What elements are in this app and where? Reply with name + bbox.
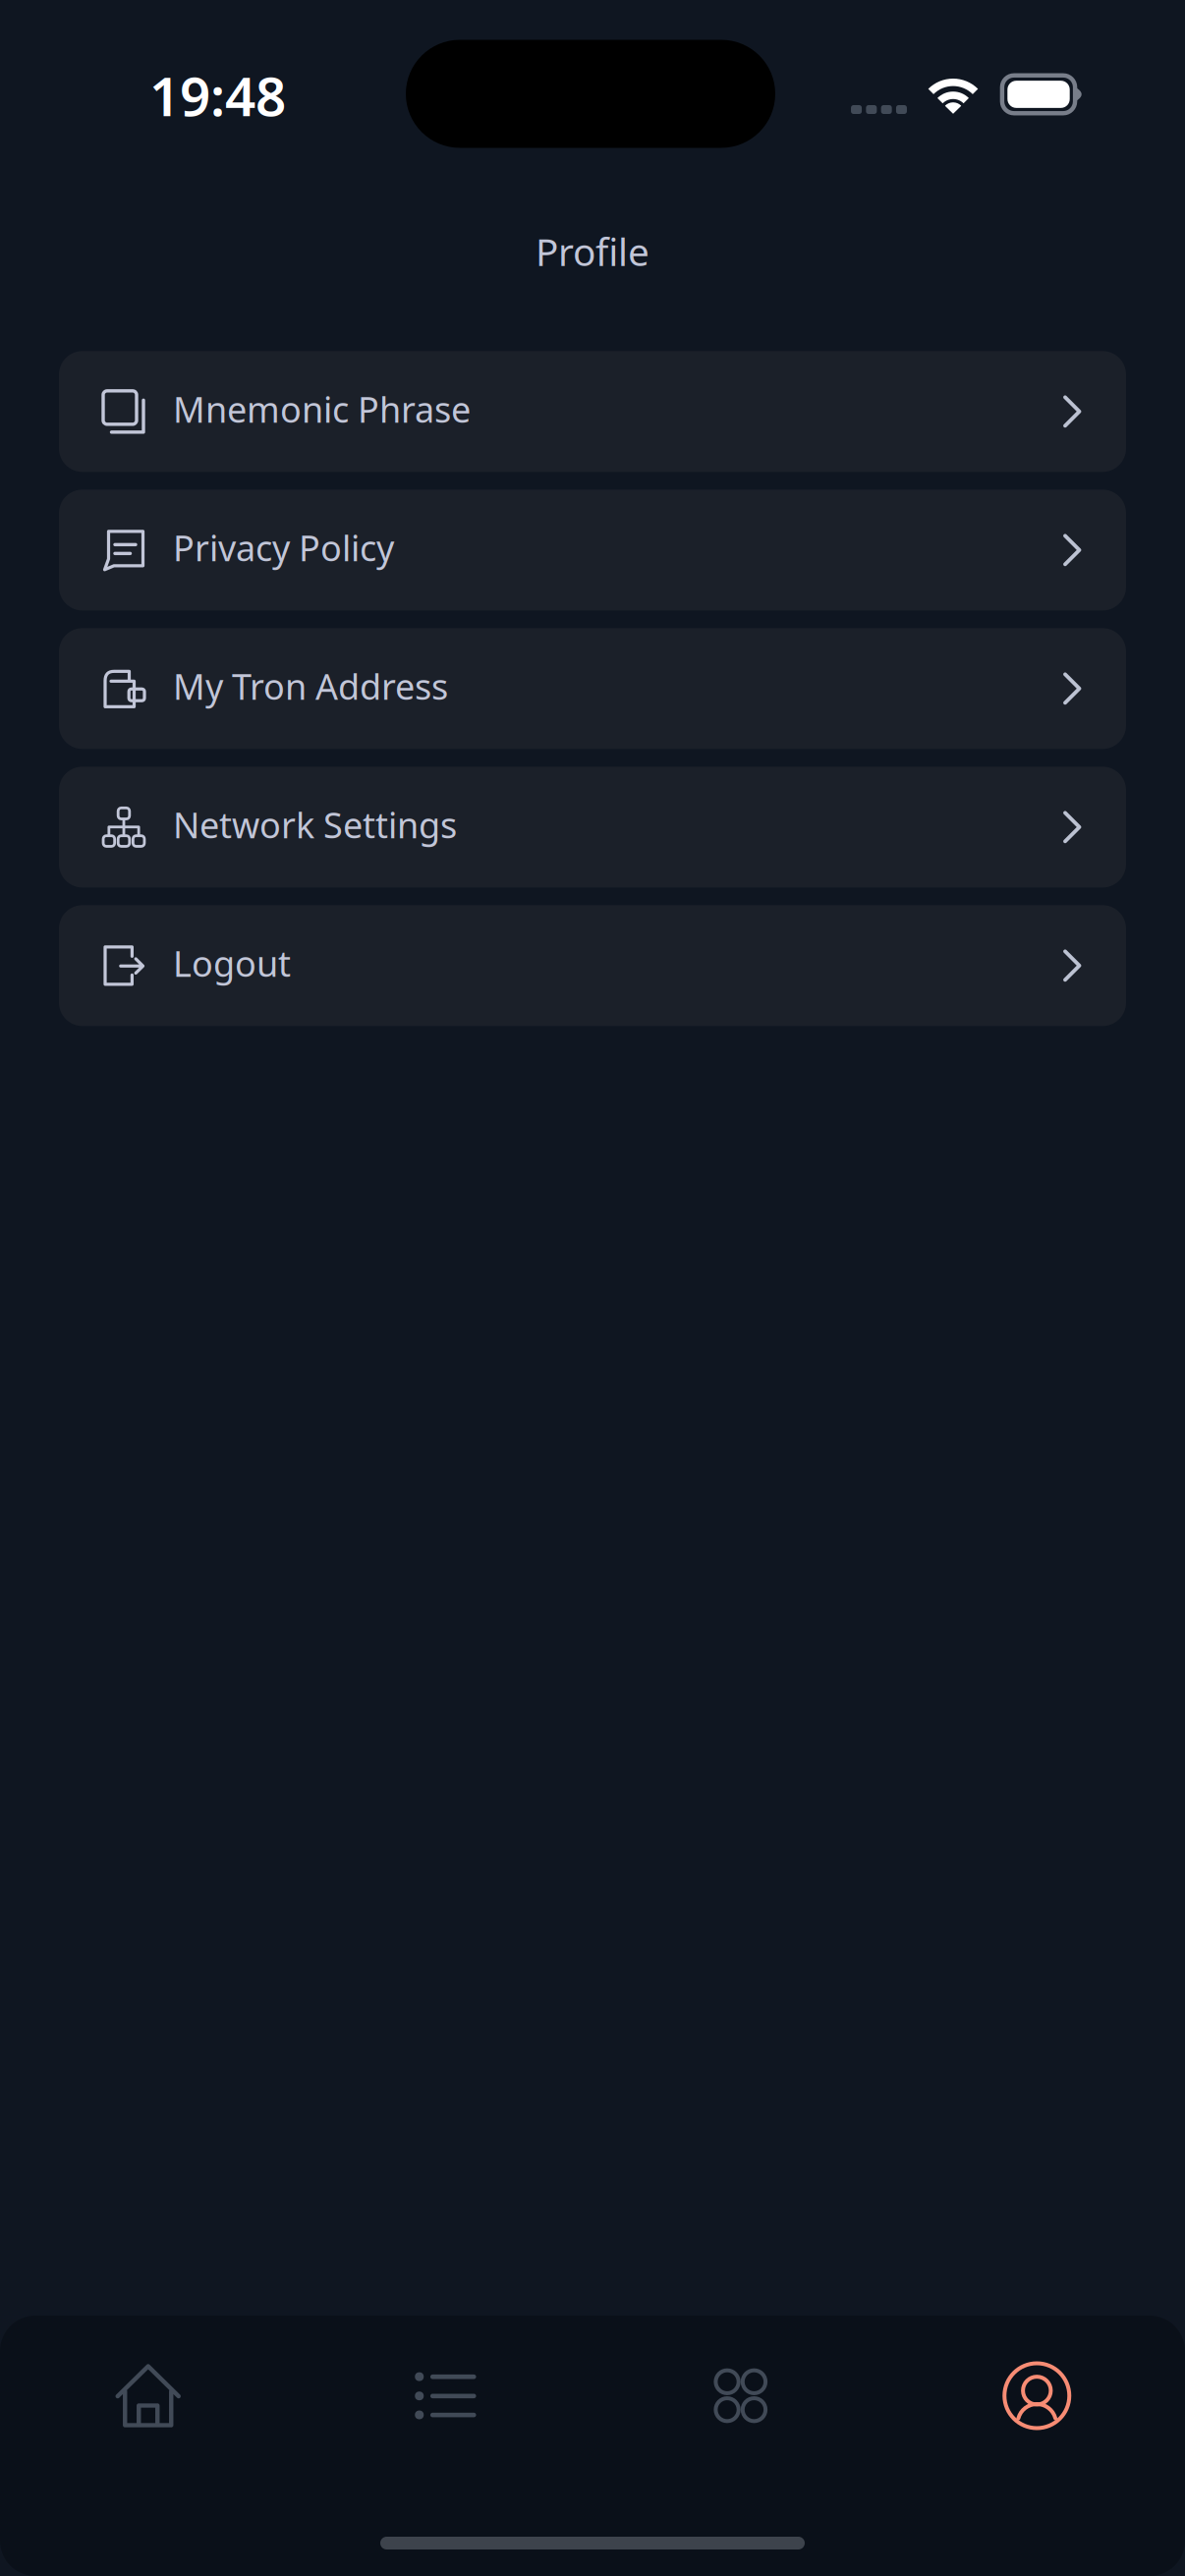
staticText: My Tron Address bbox=[173, 663, 448, 710]
button[interactable]: My Tron Address bbox=[59, 628, 1126, 749]
button[interactable]: Apps bbox=[592, 2316, 889, 2476]
staticText: Profile bbox=[536, 226, 649, 276]
staticText: Network Settings bbox=[173, 801, 457, 848]
button[interactable]: Profile bbox=[889, 2316, 1185, 2476]
button[interactable]: Privacy Policy bbox=[59, 490, 1126, 610]
staticText: Logout bbox=[173, 940, 291, 987]
staticText: Privacy Policy bbox=[173, 524, 394, 571]
button[interactable]: Transactions bbox=[296, 2316, 592, 2476]
button[interactable]: Home bbox=[0, 2316, 296, 2476]
button[interactable]: Network Settings bbox=[59, 767, 1126, 887]
button[interactable]: Logout bbox=[59, 905, 1126, 1026]
staticText: Mnemonic Phrase bbox=[173, 386, 471, 432]
staticText: 19:48 bbox=[149, 60, 286, 131]
button[interactable]: Mnemonic Phrase bbox=[59, 351, 1126, 472]
